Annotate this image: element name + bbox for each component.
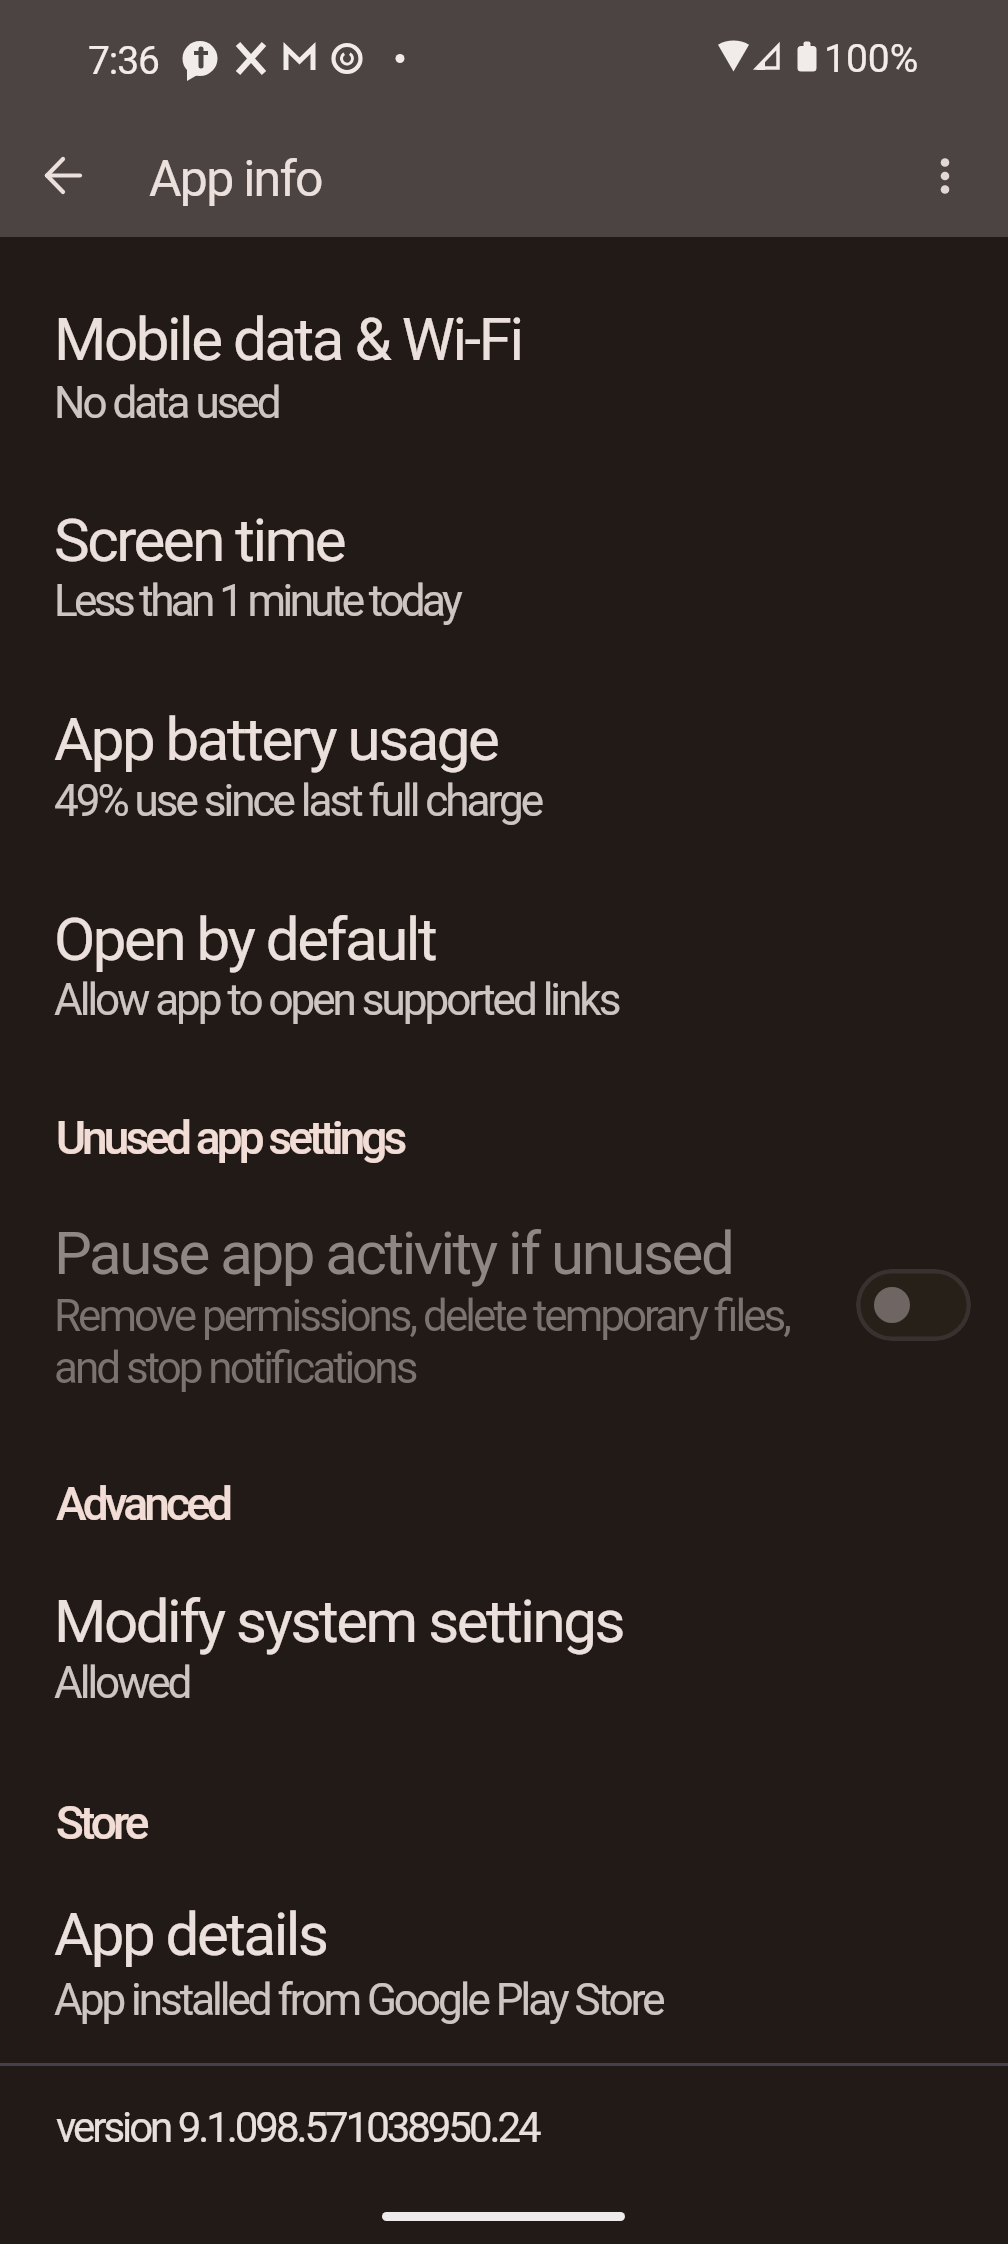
staticText: Open by default (54, 904, 436, 974)
button[interactable]: App battery usage (0, 655, 1008, 855)
staticText: Less than 1 minute today (54, 575, 460, 627)
staticText: Remove permissions, delete temporary fil… (54, 1290, 789, 1342)
button[interactable] (856, 1269, 971, 1341)
button[interactable]: App details (0, 1850, 1008, 2050)
staticText: 100% (824, 36, 919, 82)
staticText: Unused app settings (56, 1111, 404, 1165)
staticText: App installed from Google Play Store (54, 1974, 663, 2026)
staticText: Pause app activity if unused (54, 1218, 733, 1288)
staticText: No data used (54, 377, 279, 429)
staticText: Screen time (54, 505, 345, 575)
staticText: Advanced (56, 1477, 230, 1531)
button[interactable] (31, 143, 95, 207)
button[interactable] (913, 144, 977, 208)
button[interactable]: version 9.1.098.571038950.24 (0, 2063, 1008, 2183)
staticText: version 9.1.098.571038950.24 (56, 2103, 539, 2152)
staticText: App details (54, 1899, 327, 1969)
button[interactable]: Modify system settings (0, 1537, 1008, 1737)
staticText: and stop notifications (54, 1342, 416, 1394)
button[interactable]: Mobile data & Wi-Fi (0, 255, 1008, 455)
staticText: Mobile data & Wi-Fi (54, 304, 522, 374)
button[interactable]: Pause app activity if unused (0, 1169, 1008, 1419)
staticText: App battery usage (54, 704, 498, 774)
staticText: 7:36 (88, 38, 159, 84)
staticText: Allow app to open supported links (54, 974, 619, 1026)
staticText: Store (56, 1796, 146, 1850)
button[interactable]: Open by default (0, 855, 1008, 1055)
staticText: 49% use since last full charge (54, 775, 542, 827)
staticText: Allowed (54, 1657, 190, 1709)
staticText: App info (149, 150, 322, 209)
button[interactable]: Screen time (0, 456, 1008, 656)
staticText: Modify system settings (54, 1586, 623, 1656)
